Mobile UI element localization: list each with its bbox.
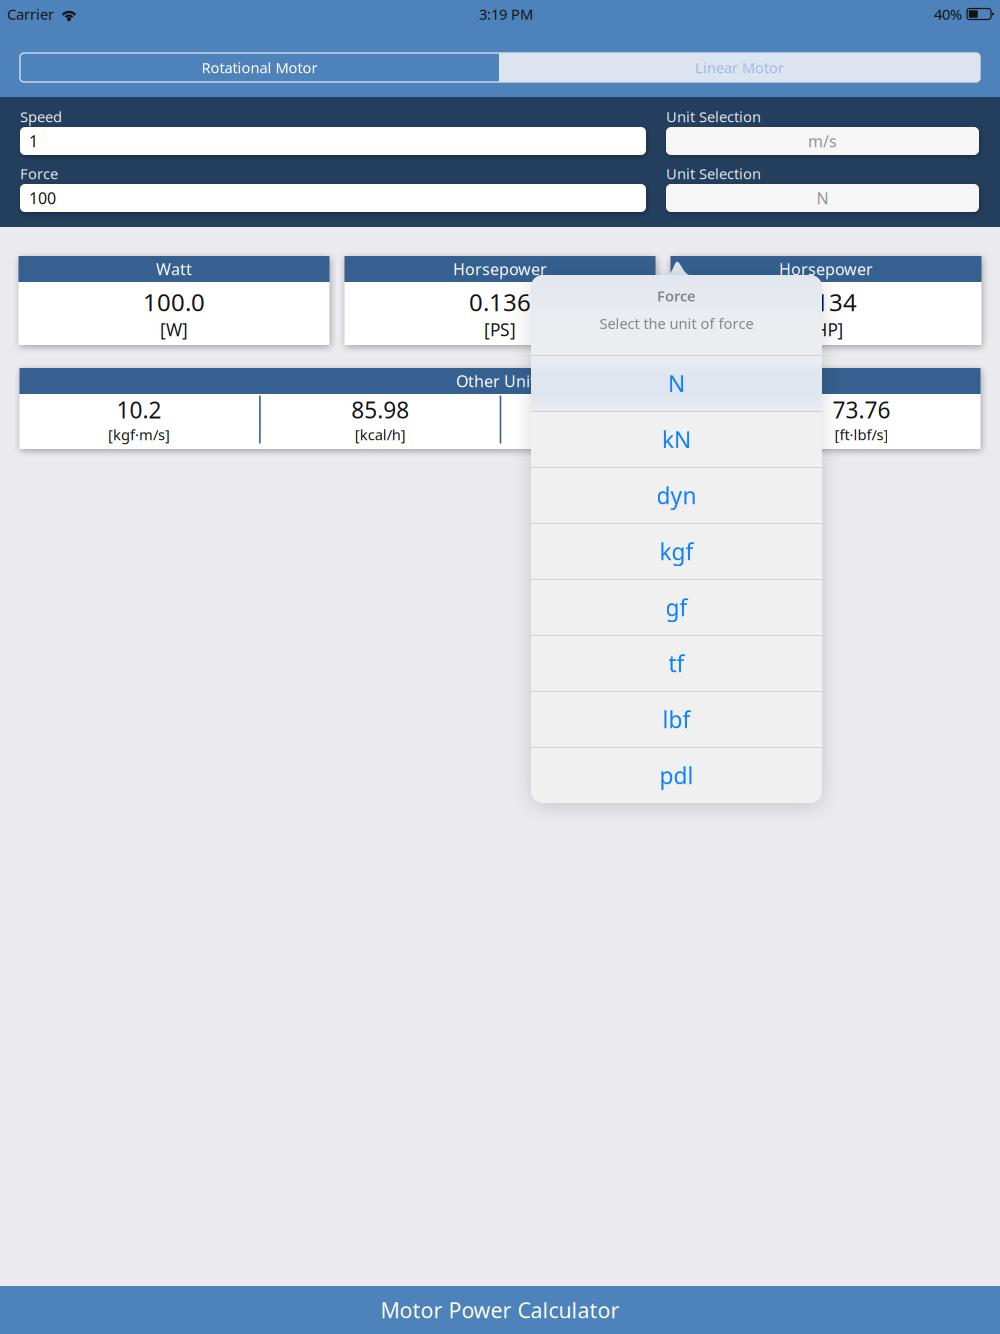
button[interactable]: lbf (531, 692, 822, 747)
staticText: [PS] (484, 318, 516, 341)
button[interactable]: dyn (531, 468, 822, 523)
staticText: Speed (20, 107, 62, 126)
staticText: Force (20, 164, 58, 183)
staticText: 85.98 (351, 395, 409, 425)
staticText: 40% (934, 4, 962, 24)
staticText: 1.0e+9 (585, 395, 656, 425)
staticText: Select the unit of force (599, 313, 753, 333)
button[interactable]: 100 (20, 184, 646, 212)
staticText: Motor Power Calculator (380, 1296, 619, 1324)
staticText: kgf (659, 536, 693, 566)
staticText: 10.2 (117, 395, 162, 425)
button[interactable]: Rotational Motor (20, 53, 499, 82)
staticText: dyn (656, 480, 696, 510)
button[interactable]: kN (531, 412, 822, 467)
staticText: N (668, 368, 685, 398)
staticText: Rotational Motor (201, 58, 317, 77)
staticText: pdl (659, 760, 693, 790)
button[interactable]: Linear Motor (499, 53, 980, 82)
staticText: Force (657, 286, 696, 305)
staticText: kN (662, 424, 691, 454)
staticText: 0.136 (469, 286, 531, 318)
button[interactable]: tf (531, 636, 822, 691)
staticText: [kcal/h] (355, 425, 406, 444)
button[interactable]: m/s (666, 127, 979, 155)
staticText: tf (668, 648, 684, 678)
staticText: 73.76 (832, 395, 890, 425)
staticText: [HP] (808, 318, 843, 341)
staticText: 1 (29, 130, 38, 152)
staticText: 3:19 PM (479, 4, 533, 24)
staticText: 100.0 (143, 286, 205, 318)
staticText: [kgf·m/s] (108, 425, 170, 444)
staticText: 100 (29, 187, 56, 209)
staticText: Linear Motor (695, 58, 784, 77)
staticText: N (816, 187, 828, 209)
staticText: Watt (156, 258, 192, 280)
staticText: Horsepower (779, 258, 873, 280)
staticText: Horsepower (453, 258, 547, 280)
button[interactable]: kgf (531, 524, 822, 579)
staticText: Unit Selection (666, 164, 761, 183)
button[interactable]: Motor Power Calculator (0, 1286, 1000, 1334)
staticText: lbf (662, 704, 690, 734)
button[interactable]: 1 (20, 127, 646, 155)
staticText: gf (665, 592, 687, 622)
staticText: [W] (160, 318, 188, 341)
button[interactable]: N (666, 184, 979, 212)
button[interactable]: pdl (531, 748, 822, 803)
staticText: Other Units (456, 370, 544, 392)
staticText: Unit Selection (666, 107, 761, 126)
staticText: m/s (808, 130, 837, 152)
button[interactable]: N (531, 356, 822, 411)
staticText: [ft·lbf/s] (834, 425, 888, 444)
button[interactable]: gf (531, 580, 822, 635)
staticText: 0.134 (795, 286, 857, 318)
staticText: Carrier (7, 4, 54, 24)
